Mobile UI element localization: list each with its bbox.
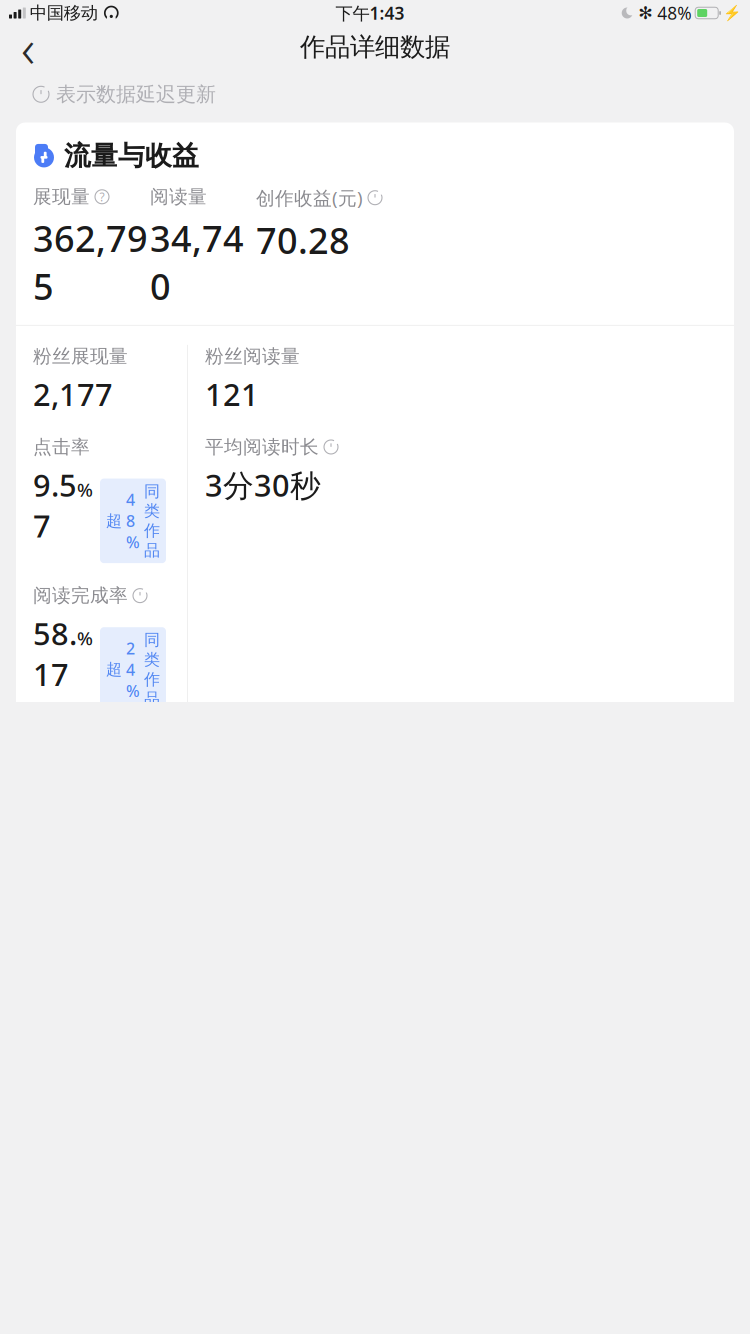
- staticText: 作品详细数据: [300, 31, 450, 62]
- staticText: 34,740: [150, 214, 244, 310]
- staticText: 3分30秒: [205, 464, 321, 505]
- staticText: 表示数据延迟更新: [56, 82, 216, 107]
- staticText: 流量与收益: [64, 140, 199, 172]
- staticText: 平均阅读时长: [205, 435, 319, 458]
- staticText: ?: [99, 189, 104, 205]
- button[interactable]: 返回: [8, 27, 48, 67]
- staticText: 下午1:43: [335, 1, 404, 24]
- staticText: 70.28: [256, 216, 350, 264]
- staticText: 点击率: [33, 435, 90, 458]
- staticText: 48%: [126, 489, 140, 553]
- staticText: 24%: [126, 638, 140, 701]
- staticText: 粉丝展现量: [33, 345, 128, 368]
- staticText: 阅读完成率: [33, 584, 128, 607]
- staticText: 2,177: [33, 374, 113, 414]
- staticText: 超: [106, 511, 122, 531]
- staticText: 同类作品: [144, 482, 160, 560]
- staticText: %: [77, 626, 93, 650]
- staticText: %: [77, 477, 93, 502]
- staticText: ✻: [638, 3, 653, 23]
- staticText: ⚡: [723, 5, 741, 21]
- staticText: 超: [106, 660, 122, 679]
- staticText: 9.57: [33, 464, 77, 546]
- staticText: 同类作品: [144, 630, 160, 709]
- staticText: 粉丝阅读量: [205, 345, 300, 368]
- staticText: 121: [205, 374, 259, 414]
- staticText: 58.17: [33, 613, 77, 694]
- staticText: ‹: [21, 12, 35, 82]
- staticText: 阅读量: [150, 185, 207, 208]
- staticText: 展现量: [33, 185, 90, 208]
- staticText: 48%: [657, 1, 691, 24]
- staticText: 创作收益(元): [256, 185, 363, 210]
- staticText: 中国移动: [30, 2, 98, 24]
- staticText: 362,795: [33, 214, 148, 310]
